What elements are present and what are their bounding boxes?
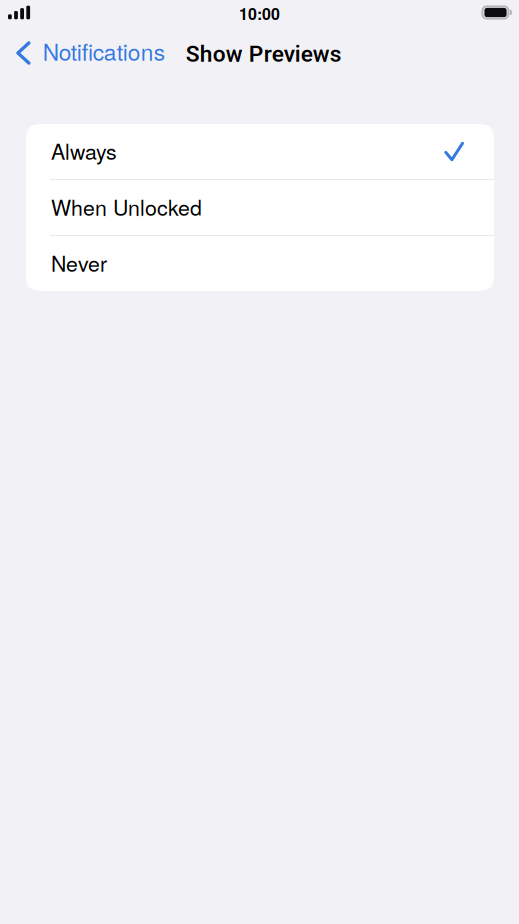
button[interactable]: Never (26, 236, 494, 291)
button[interactable]: Always (26, 124, 494, 179)
staticText: Always (51, 135, 117, 166)
staticText: Never (51, 247, 107, 278)
staticText: Show Previews (186, 41, 342, 67)
button[interactable]: Back to Notifications (0, 31, 171, 75)
staticText: 10:00 (239, 2, 280, 25)
button[interactable]: When Unlocked (26, 180, 494, 235)
staticText: Notifications (43, 35, 165, 67)
staticText: When Unlocked (51, 191, 202, 222)
